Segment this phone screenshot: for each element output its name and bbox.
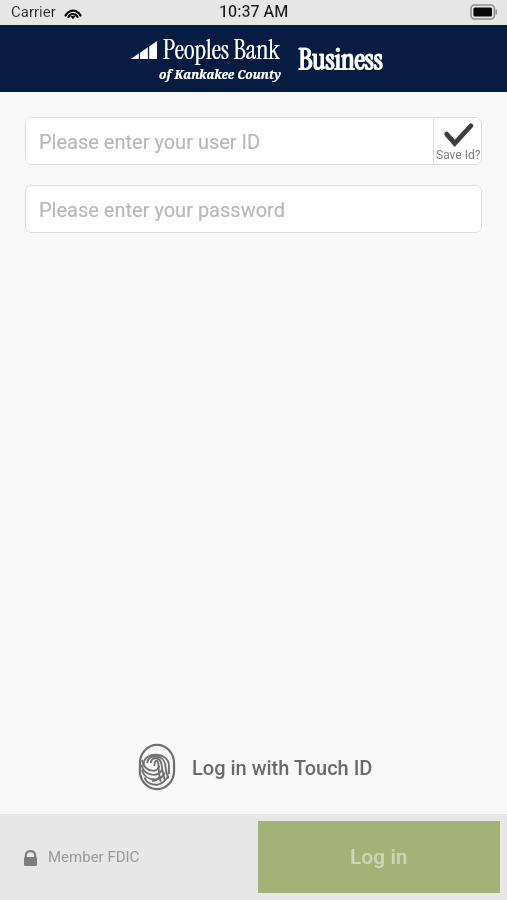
staticText: Carrier [11, 3, 56, 21]
staticText: Member FDIC [48, 848, 140, 866]
button[interactable]: Log in with Touch ID [139, 744, 373, 790]
staticText: Peoples Bank [163, 33, 281, 67]
staticText: Business [298, 41, 383, 79]
button[interactable]: Please enter your user ID [25, 117, 433, 165]
staticText: of Kankakee County [159, 66, 281, 82]
staticText: Log in [350, 845, 408, 870]
staticText: 10:37 AM [219, 2, 289, 21]
staticText: Save Id? [436, 148, 481, 162]
button[interactable]: Save Id [434, 117, 482, 165]
button[interactable]: Please enter your password [25, 185, 482, 233]
staticText: Log in with Touch ID [192, 756, 373, 779]
staticText: Please enter your user ID [39, 130, 261, 153]
button[interactable]: Log in [258, 821, 500, 893]
staticText: Please enter your password [39, 198, 285, 221]
